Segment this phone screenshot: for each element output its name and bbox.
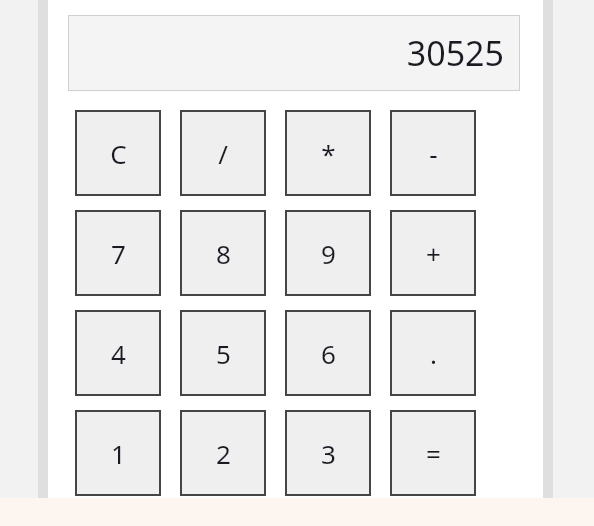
button[interactable]: + xyxy=(390,210,476,296)
staticText: . xyxy=(430,336,437,371)
button[interactable]: 30525 xyxy=(68,15,520,91)
button[interactable]: * xyxy=(285,110,371,196)
staticText: 1 xyxy=(111,436,126,471)
button[interactable]: C xyxy=(75,110,161,196)
button[interactable]: = xyxy=(390,410,476,496)
button[interactable]: - xyxy=(390,110,476,196)
button[interactable]: 4 xyxy=(75,310,161,396)
staticText: 6 xyxy=(321,336,336,371)
staticText: = xyxy=(426,436,441,471)
staticText: 9 xyxy=(321,236,336,271)
staticText: 2 xyxy=(216,436,231,471)
staticText: 5 xyxy=(216,336,231,371)
button[interactable]: 3 xyxy=(285,410,371,496)
staticText: 8 xyxy=(216,236,231,271)
staticText: 7 xyxy=(111,236,126,271)
staticText: * xyxy=(321,136,336,171)
button[interactable]: 7 xyxy=(75,210,161,296)
staticText: 3 xyxy=(321,436,336,471)
staticText: + xyxy=(426,236,441,271)
staticText: C xyxy=(110,136,127,171)
staticText: 30525 xyxy=(406,30,504,76)
button[interactable]: 8 xyxy=(180,210,266,296)
button[interactable]: 1 xyxy=(75,410,161,496)
button[interactable]: 9 xyxy=(285,210,371,296)
button[interactable]: . xyxy=(390,310,476,396)
button[interactable]: 2 xyxy=(180,410,266,496)
staticText: / xyxy=(218,136,228,171)
staticText: - xyxy=(429,136,438,171)
button[interactable]: / xyxy=(180,110,266,196)
button[interactable]: 5 xyxy=(180,310,266,396)
staticText: 4 xyxy=(111,336,126,371)
button[interactable]: 6 xyxy=(285,310,371,396)
